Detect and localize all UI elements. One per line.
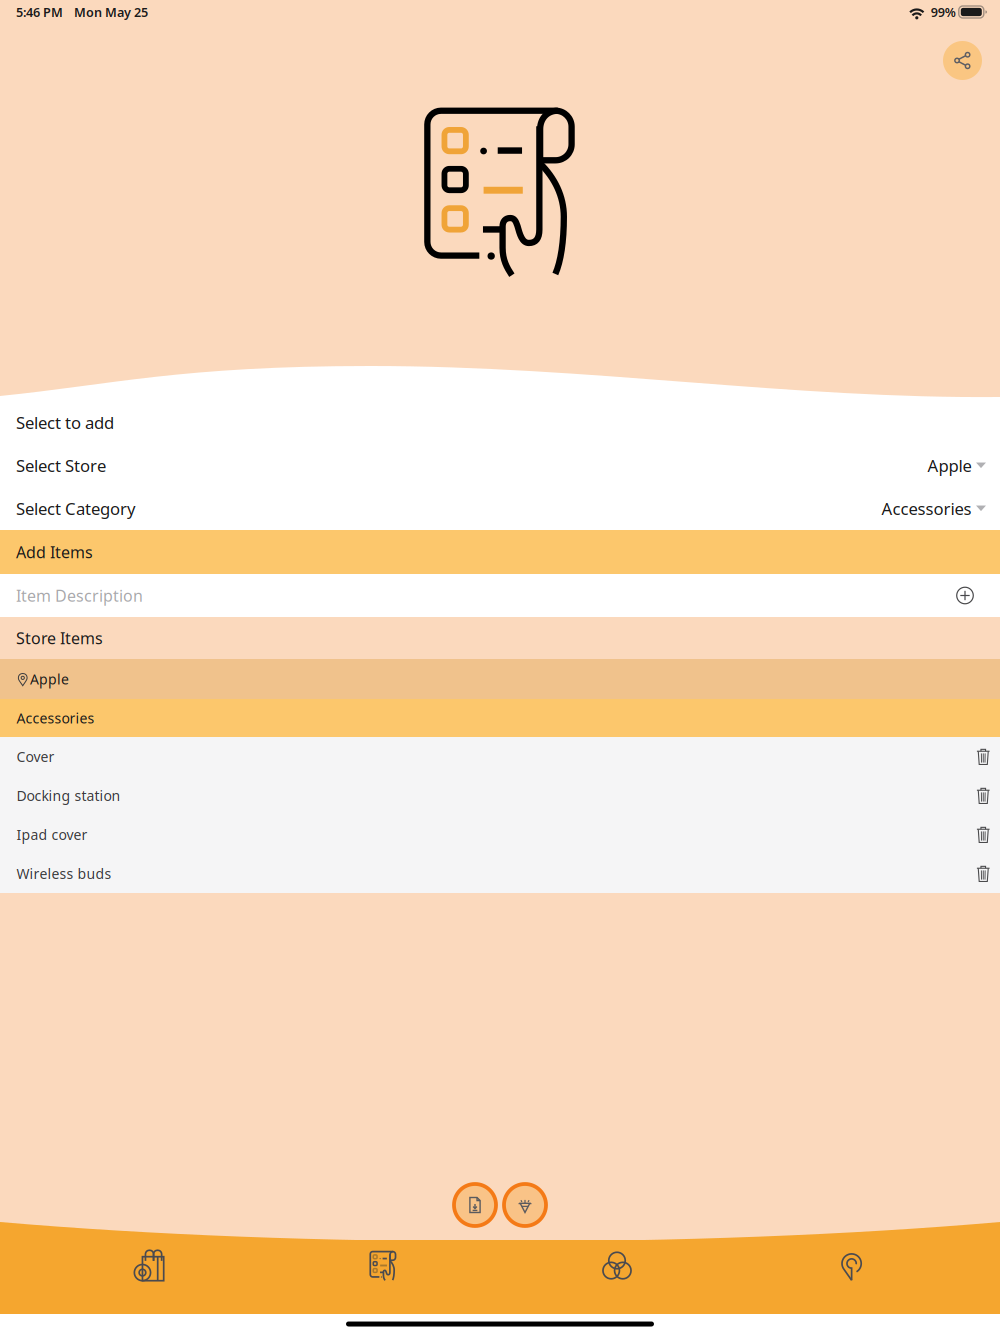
button[interactable]: Add item	[943, 574, 1000, 616]
staticText: Apple	[927, 454, 971, 476]
staticText: Accessories	[881, 497, 971, 519]
button[interactable]: Delete Docking station	[966, 777, 1000, 814]
staticText: Mon May 25	[74, 4, 148, 20]
button[interactable]: Categories	[500, 1240, 734, 1314]
staticText: Select to add	[16, 411, 114, 433]
staticText: Store Items	[16, 627, 103, 649]
button[interactable]: Stores	[32, 1240, 266, 1314]
button[interactable]: Delete Cover	[966, 738, 1000, 775]
staticText: Add Items	[16, 541, 93, 563]
button[interactable]: Celebrate	[504, 1184, 546, 1226]
staticText: Accessories	[16, 709, 94, 727]
staticText: Select Category	[16, 497, 136, 519]
staticText: Item Description	[16, 585, 143, 606]
staticText: Ipad cover	[16, 825, 87, 844]
button[interactable]: Export list	[454, 1184, 496, 1226]
staticText: 99%	[931, 4, 956, 20]
button[interactable]: Select Store	[0, 444, 1000, 487]
button[interactable]: Select Category	[0, 487, 1000, 530]
button[interactable]: Share	[943, 41, 982, 80]
staticText: Select Store	[16, 454, 106, 476]
button[interactable]: Delete Ipad cover	[966, 816, 1000, 853]
staticText: Docking station	[16, 786, 120, 805]
button[interactable]: Lists	[266, 1240, 500, 1314]
staticText: 5:46 PM	[16, 4, 63, 20]
staticText: Cover	[16, 747, 54, 766]
button[interactable]: Map	[734, 1240, 968, 1314]
staticText: Apple	[30, 670, 69, 688]
button[interactable]: Delete Wireless buds	[966, 855, 1000, 892]
staticText: Wireless buds	[16, 864, 111, 883]
